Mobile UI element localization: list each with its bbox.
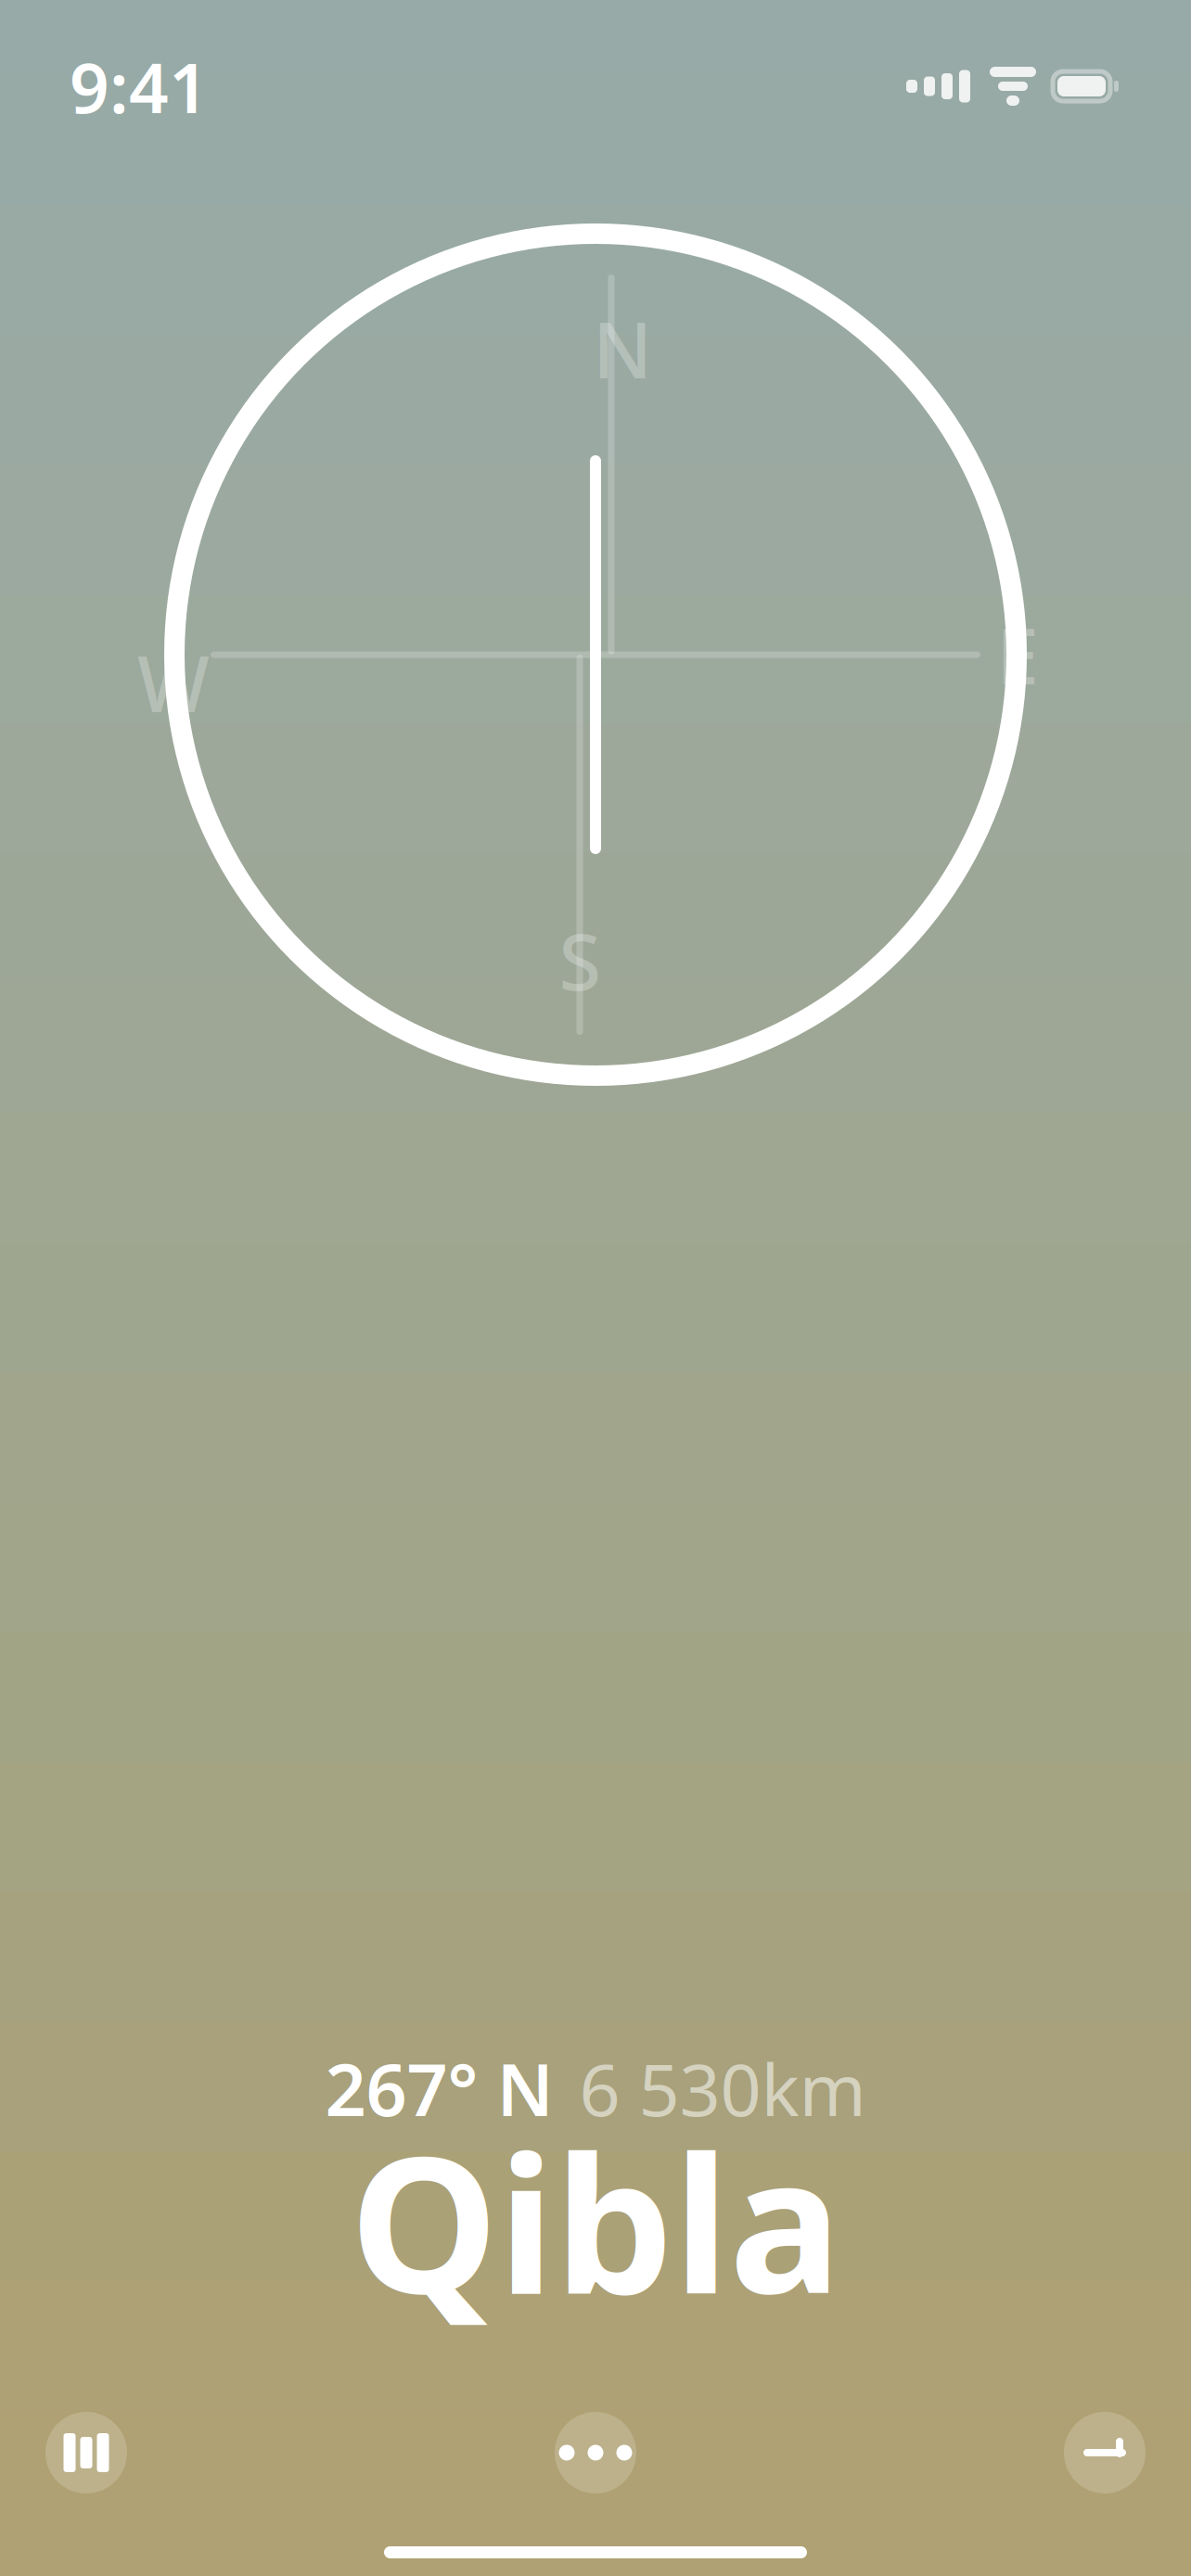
staticText: 9:41 bbox=[70, 40, 209, 132]
button[interactable]: Map bbox=[35, 2402, 137, 2504]
staticText: S bbox=[559, 910, 601, 1012]
staticText: E bbox=[996, 604, 1039, 706]
staticText: N bbox=[593, 298, 652, 400]
button[interactable]: More options bbox=[544, 2402, 647, 2504]
button[interactable]: Next bbox=[1054, 2402, 1156, 2504]
staticText: 267° N bbox=[325, 2041, 553, 2136]
staticText: W bbox=[137, 632, 210, 733]
staticText: Qibla bbox=[350, 2095, 841, 2345]
staticText: 6 530km bbox=[579, 2041, 866, 2136]
